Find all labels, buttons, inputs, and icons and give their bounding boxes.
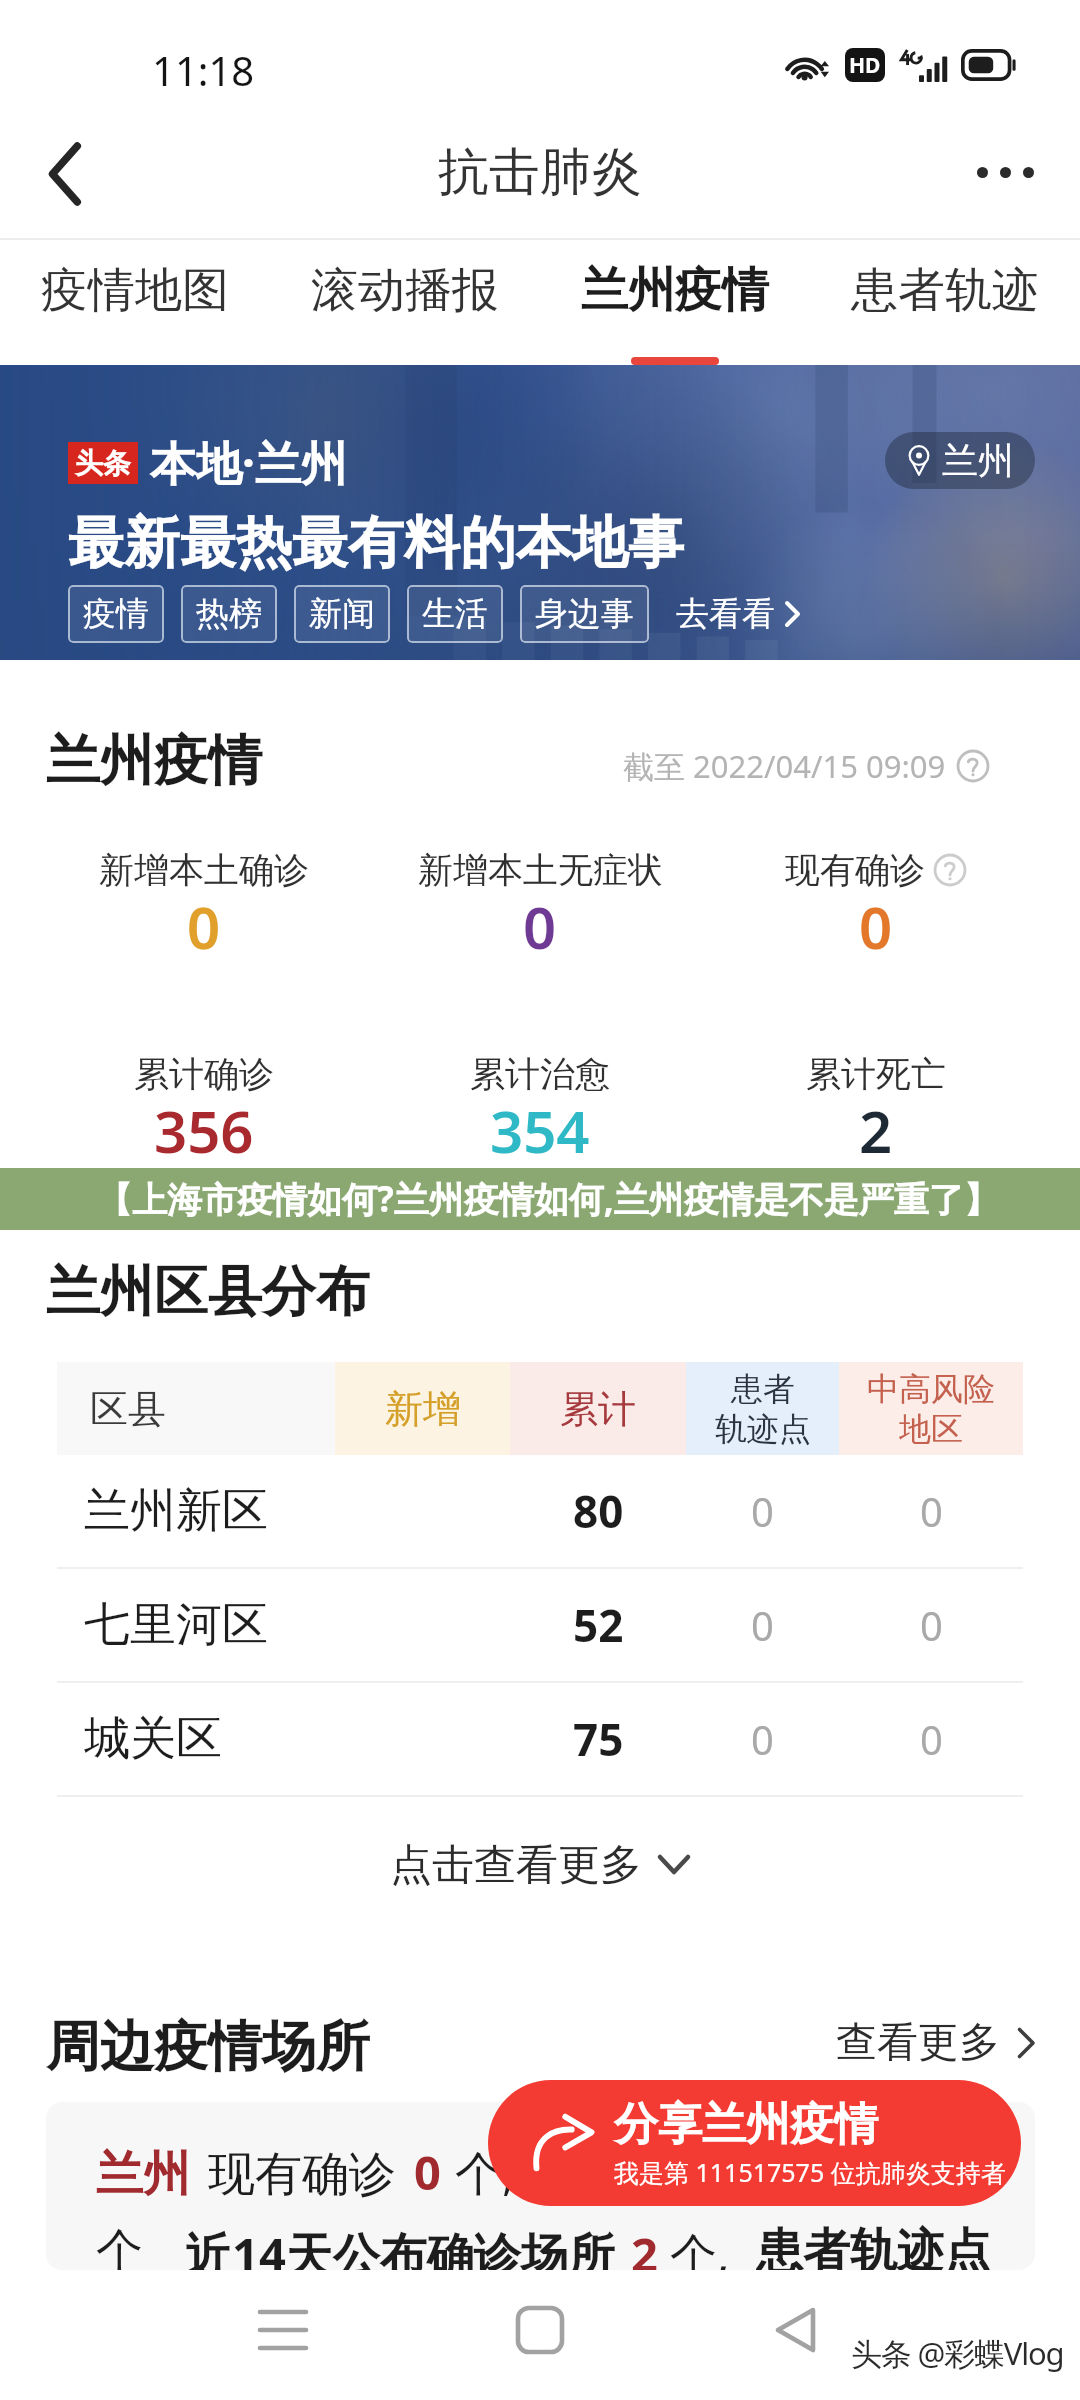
staticText: 点击查看更多 (390, 1839, 642, 1892)
staticText: 0 (920, 1598, 943, 1652)
staticText: 累计确诊 (134, 1052, 274, 1096)
button[interactable]: 热榜 (181, 585, 277, 643)
staticText: 354 (490, 1091, 590, 1170)
staticText: 疫情 (83, 593, 149, 635)
button[interactable]: 七里河区 (57, 1569, 1023, 1681)
staticText: 近14天公布确诊场所 (185, 2222, 615, 2270)
staticText: 0 (859, 887, 893, 966)
button[interactable]: 兰州新区 (57, 1455, 1023, 1567)
button[interactable]: 滚动播报 (270, 240, 540, 365)
button[interactable]: 查看更多 (836, 2021, 1036, 2073)
staticText: 0 (751, 1712, 774, 1766)
staticText: 新闻 (309, 593, 375, 635)
staticText: 区县 (90, 1385, 166, 1433)
button[interactable]: 疫情 (68, 585, 164, 643)
staticText: 分享兰州疫情 (614, 2097, 878, 2152)
button[interactable]: 身边事 (520, 585, 649, 643)
staticText: 兰州区县分布 (46, 1258, 370, 1326)
button[interactable]: 疫情地图 (0, 240, 270, 365)
staticText: 兰州 (942, 438, 1014, 483)
staticText: 个, (670, 2222, 730, 2270)
staticText: 累计治愈 (470, 1052, 610, 1096)
staticText: 城关区 (84, 1710, 222, 1768)
button[interactable]: 累计死亡 (708, 1052, 1044, 1175)
staticText: 截至 2022/04/15 09:09 (623, 745, 946, 787)
staticText: 52 (573, 1595, 624, 1655)
staticText: 11:18 (152, 43, 255, 97)
staticText: 75 (573, 1709, 624, 1769)
staticText: 患者轨迹点 (756, 2222, 991, 2270)
staticText: 身边事 (535, 593, 634, 635)
staticText: 疫情地图 (41, 261, 229, 320)
button[interactable]: 兰州 (885, 432, 1035, 489)
staticText: 兰州疫情 (581, 261, 769, 320)
button[interactable]: More options (950, 108, 1080, 240)
staticText: 头条 @彩蝶Vlog (851, 2332, 1064, 2374)
staticText: 个 (96, 2222, 143, 2270)
button[interactable]: 新增本土确诊 (36, 848, 372, 971)
staticText: 0 (751, 1484, 774, 1538)
staticText: 兰州疫情 (46, 727, 262, 795)
staticText: 0 (187, 887, 221, 966)
button[interactable]: 城关区 (57, 1683, 1023, 1795)
staticText: 个, (455, 2140, 515, 2204)
staticText: 新增本土确诊 (99, 848, 309, 892)
button[interactable]: 患者轨迹 (810, 240, 1080, 365)
button[interactable]: 生活 (407, 585, 503, 643)
staticText: 0 (523, 887, 557, 966)
staticText: 0 (920, 1484, 943, 1538)
staticText: 【上海市疫情如何?兰州疫情如何,兰州疫情是不是严重了】 (97, 1175, 999, 1223)
button[interactable]: 新增本土无症状 (372, 848, 708, 971)
staticText: 兰州 (96, 2145, 190, 2204)
staticText: 抗击肺炎 (438, 140, 642, 204)
button[interactable]: 累计确诊 (36, 1052, 372, 1175)
button[interactable]: 兰州疫情 (540, 240, 810, 365)
staticText: 累计 (560, 1385, 636, 1433)
staticText: 热榜 (196, 593, 262, 635)
button[interactable]: 截至 2022/04/15 09:09 (623, 740, 990, 782)
staticText: 头条 (75, 446, 131, 481)
staticText: 兰州新区 (84, 1482, 268, 1540)
staticText: 新增 (385, 1385, 461, 1433)
staticText: 2 (631, 2222, 658, 2270)
staticText: 新增本土无症状 (418, 848, 663, 892)
staticText: HD (849, 51, 881, 80)
staticText: 0 (751, 1598, 774, 1652)
staticText: 356 (154, 1091, 254, 1170)
staticText: 患者 轨迹点 (715, 1369, 811, 1449)
staticText: 查看更多 (836, 2017, 1000, 2069)
staticText: 累计死亡 (806, 1052, 946, 1096)
staticText: 周边疫情场所 (46, 2013, 370, 2081)
staticText: 现有确诊 (208, 2145, 396, 2204)
staticText: 0 (414, 2140, 441, 2204)
staticText: 80 (573, 1481, 624, 1541)
staticText: 0 (920, 1712, 943, 1766)
staticText: 七里河区 (84, 1596, 268, 1654)
button[interactable]: Back (0, 108, 130, 240)
button[interactable]: 去看看 (676, 585, 801, 643)
staticText: 去看看 (676, 593, 775, 635)
staticText: 中高风险 地区 (867, 1369, 995, 1449)
staticText: 2 (859, 1091, 893, 1170)
staticText: 我是第 111517575 位抗肺炎支持者 (614, 2155, 1006, 2189)
staticText: 现有确诊 (785, 848, 925, 892)
staticText: 本地·兰州 (150, 431, 347, 494)
button[interactable]: Recents (237, 2286, 329, 2374)
staticText: 滚动播报 (311, 261, 499, 320)
button[interactable]: Home (494, 2286, 586, 2374)
button[interactable]: 累计治愈 (372, 1052, 708, 1175)
button[interactable]: 现有确诊 (708, 848, 1044, 971)
button[interactable]: 新闻 (294, 585, 390, 643)
staticText: 最新最热最有料的本地事 (68, 508, 684, 579)
staticText: 患者轨迹 (851, 261, 1039, 320)
button[interactable]: Back (749, 2286, 841, 2374)
staticText: 生活 (422, 593, 488, 635)
button[interactable]: 分享兰州疫情 (488, 2080, 1021, 2206)
button[interactable]: 点击查看更多 (57, 1833, 1023, 1897)
